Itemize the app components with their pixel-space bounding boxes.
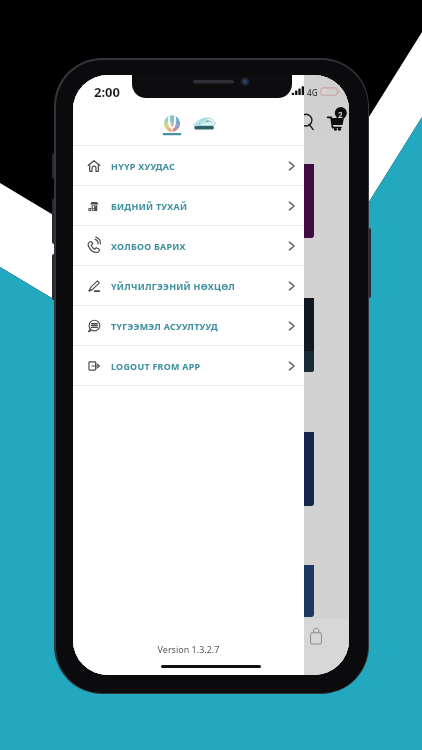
- staticText: 2: [338, 109, 343, 120]
- button[interactable]: ТҮГЭЭМЭЛ АСУУЛТУУД: [73, 306, 304, 346]
- button[interactable]: Search: [298, 111, 316, 131]
- button[interactable]: БИДНИЙ ТУХАЙ: [73, 186, 304, 226]
- button[interactable]: Cart: [326, 106, 348, 132]
- staticText: ТҮГЭЭМЭЛ АСУУЛТУУД: [111, 320, 218, 332]
- staticText: ҮЙЛЧИЛГЭЭНИЙ НӨХЦӨЛ: [111, 280, 236, 292]
- button[interactable]: ҮЙЛЧИЛГЭЭНИЙ НӨХЦӨЛ: [73, 266, 304, 306]
- staticText: НҮҮР ХУУДАС: [111, 160, 175, 172]
- staticText: LOGOUT FROM APP: [111, 360, 201, 372]
- staticText: Version 1.3.2.7: [73, 643, 304, 655]
- button[interactable]: ХОЛБОО БАРИХ: [73, 226, 304, 266]
- staticText: ХОЛБОО БАРИХ: [111, 240, 186, 252]
- staticText: БИДНИЙ ТУХАЙ: [111, 200, 188, 212]
- staticText: 2:00: [94, 83, 120, 101]
- button[interactable]: LOGOUT FROM APP: [73, 346, 304, 386]
- staticText: 4G: [307, 87, 318, 98]
- button[interactable]: НҮҮР ХУУДАС: [73, 146, 304, 186]
- button[interactable]: Shop: [310, 628, 322, 644]
